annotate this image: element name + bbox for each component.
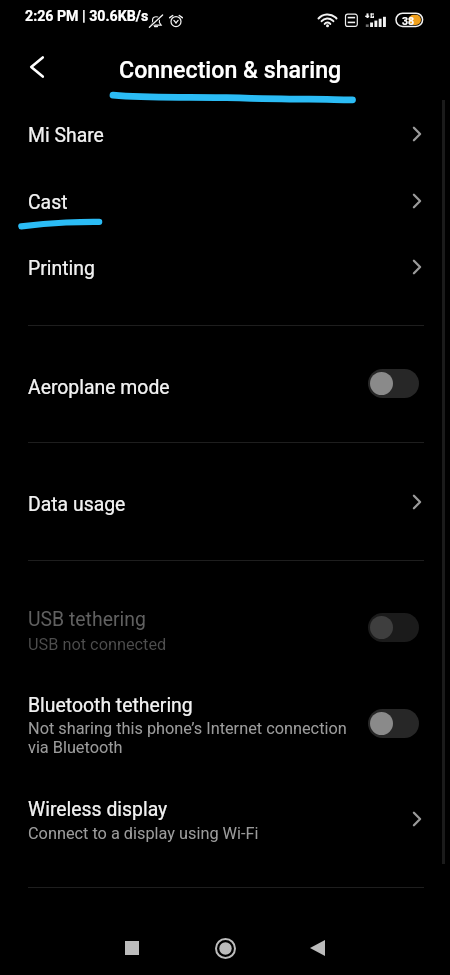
button[interactable]: Aeroplane mode (0, 326, 450, 442)
button[interactable]: Recent apps (108, 924, 156, 972)
button[interactable]: USB tethering (368, 613, 419, 642)
button[interactable]: Navigate up (17, 47, 57, 87)
staticText: USB not connected (28, 635, 167, 654)
staticText: Mi Share (28, 124, 104, 147)
staticText: Cast (28, 191, 68, 214)
button[interactable]: USB tethering (0, 561, 450, 671)
button[interactable]: Data usage (0, 443, 450, 560)
button[interactable]: Printing (0, 234, 450, 300)
button[interactable]: Bluetooth tethering (0, 671, 450, 775)
staticText: Aeroplane mode (28, 376, 170, 399)
staticText: Connect to a display using Wi-Fi (28, 824, 259, 843)
button[interactable]: Home (201, 924, 249, 972)
staticText: Bluetooth tethering (28, 694, 193, 717)
staticText: 2:26 PM | 30.6KB/s (25, 8, 149, 25)
staticText: Data usage (28, 493, 126, 516)
button[interactable]: Wireless display (0, 775, 450, 861)
staticText: Not sharing this phone’s Internet connec… (28, 719, 347, 738)
staticText: 38 (402, 15, 415, 27)
staticText: Wireless display (28, 798, 168, 821)
button[interactable]: Back (293, 924, 341, 972)
button[interactable]: Mi Share (0, 101, 450, 167)
staticText: Connection & sharing (119, 56, 342, 83)
button[interactable]: Bluetooth tethering (368, 709, 419, 738)
staticText: via Bluetooth (28, 738, 123, 757)
button[interactable]: Aeroplane mode (368, 369, 419, 398)
staticText: USB tethering (28, 608, 146, 631)
staticText: Printing (28, 257, 95, 280)
button[interactable]: Cast (0, 167, 450, 234)
